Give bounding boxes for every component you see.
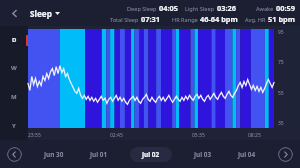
staticText: 75 (278, 59, 284, 66)
staticText: M (11, 93, 17, 101)
button[interactable]: Jul 03 (191, 147, 215, 162)
staticText: Total Sleep (110, 16, 139, 24)
button[interactable]: Jul 04 (235, 147, 259, 162)
staticText: 95 (278, 29, 284, 36)
button[interactable]: Sleep (30, 8, 60, 19)
staticText: Jun 30 (44, 150, 64, 159)
staticText: Jul 01 (90, 150, 108, 159)
staticText: Light Sleep (185, 5, 215, 13)
button[interactable]: D (0, 26, 28, 54)
staticText: Y (12, 122, 16, 130)
staticText: Sleep (30, 8, 52, 19)
staticText: 05:35 (192, 132, 205, 139)
staticText: W (11, 64, 17, 72)
button[interactable]: Y (0, 111, 28, 140)
button[interactable]: Back (0, 0, 28, 26)
staticText: 51 bpm (268, 14, 295, 24)
staticText: 35 (278, 120, 284, 127)
button[interactable]: Jun 30 (41, 147, 67, 162)
staticText: Jul 02 (142, 150, 160, 159)
staticText: Awake (256, 5, 274, 13)
button[interactable]: W (0, 54, 28, 82)
staticText: 03:26 (217, 3, 236, 13)
staticText: 04:05 (159, 3, 178, 13)
staticText: Deep Sleep (127, 5, 157, 13)
staticText: 07:31 (141, 14, 160, 24)
staticText: Avg. HR (245, 16, 266, 24)
staticText: Jul 04 (238, 150, 256, 159)
button[interactable]: Previous day (7, 147, 22, 162)
staticText: 46-64 bpm (200, 14, 238, 24)
button[interactable]: M (0, 82, 28, 111)
button[interactable]: Jul 02 (130, 147, 172, 162)
button[interactable]: Jul 01 (87, 147, 111, 162)
staticText: 02:45 (110, 132, 123, 139)
staticText: 23:55 (28, 132, 41, 139)
staticText: 55 (278, 90, 284, 97)
staticText: Jul 03 (194, 150, 212, 159)
staticText: HR Range (172, 16, 198, 24)
staticText: 08:25 (248, 132, 261, 139)
staticText: 00:59 (276, 3, 295, 13)
button[interactable]: Next day (278, 147, 293, 162)
staticText: D (12, 36, 17, 44)
